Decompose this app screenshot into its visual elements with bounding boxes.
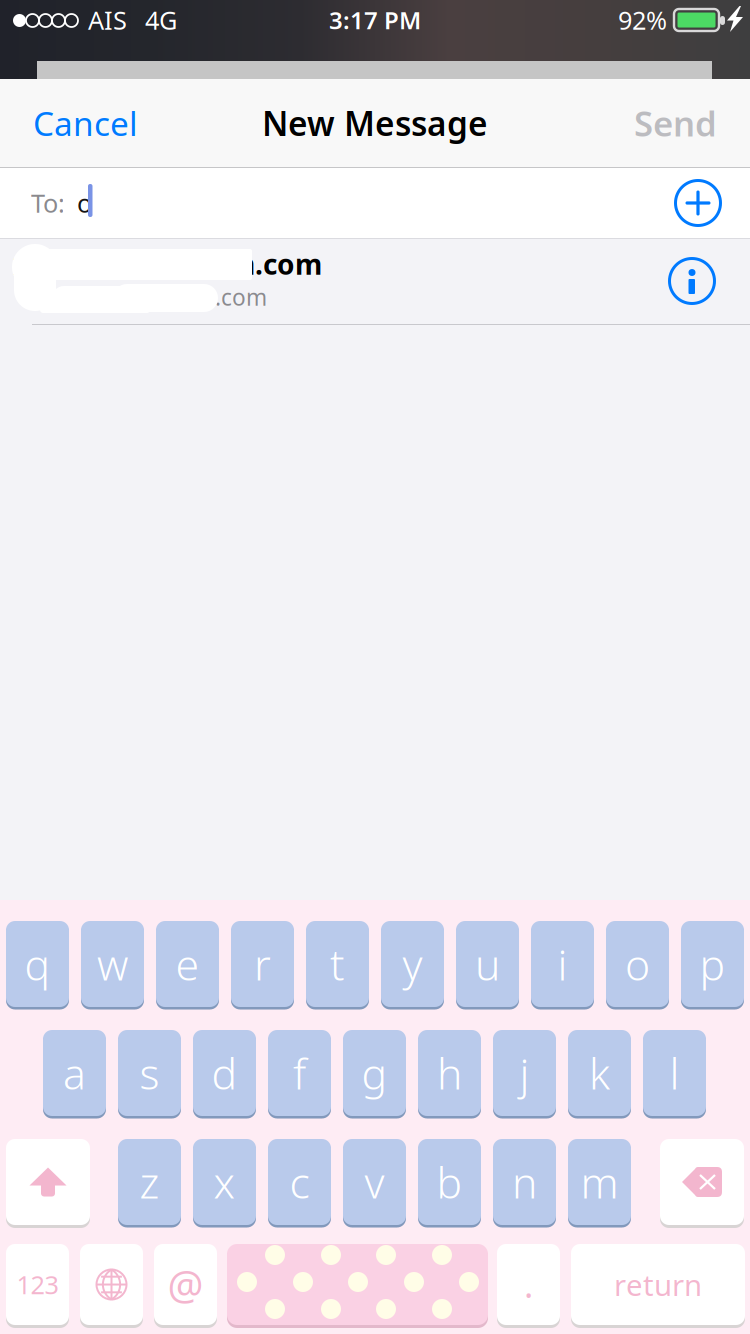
button[interactable]: a <box>43 1030 106 1119</box>
staticText: l <box>669 1045 679 1101</box>
staticText: t <box>330 936 345 992</box>
staticText: o <box>625 936 650 992</box>
button[interactable]: n <box>493 1139 556 1228</box>
staticText: u <box>475 936 500 992</box>
staticText: @ <box>167 1258 203 1311</box>
button[interactable]: k <box>568 1030 631 1119</box>
button[interactable]: c <box>268 1139 331 1228</box>
staticText: o <box>77 186 92 220</box>
staticText: b <box>436 1154 462 1210</box>
staticText: mmmmmmmmm.com <box>12 245 322 283</box>
staticText: x <box>213 1154 235 1210</box>
staticText: 92% <box>618 3 667 37</box>
button[interactable]: s <box>118 1030 181 1119</box>
staticText: i <box>557 936 567 992</box>
button[interactable]: d <box>193 1030 256 1119</box>
staticText: s <box>139 1045 159 1101</box>
staticText: 123 <box>16 1268 58 1301</box>
button[interactable]: f <box>268 1030 331 1119</box>
staticText: n <box>512 1154 537 1210</box>
staticText: w <box>97 936 128 992</box>
staticText: d <box>211 1045 237 1101</box>
button[interactable]: h <box>418 1030 481 1119</box>
button[interactable]: m <box>568 1139 631 1228</box>
staticText: r <box>254 936 271 992</box>
staticText: c <box>289 1154 309 1210</box>
button[interactable]: u <box>456 921 519 1010</box>
button[interactable]: Shift <box>6 1139 90 1228</box>
button[interactable]: w <box>81 921 144 1010</box>
staticText: m <box>580 1154 618 1210</box>
button[interactable]: Send <box>570 79 750 167</box>
staticText: e <box>175 936 199 992</box>
staticText: k <box>589 1045 610 1101</box>
button[interactable]: Add contact <box>674 179 722 227</box>
staticText: To: <box>31 186 65 220</box>
staticText: New Message <box>262 101 488 145</box>
button[interactable]: x <box>193 1139 256 1228</box>
button[interactable]: @ <box>154 1244 217 1328</box>
button[interactable]: j <box>493 1030 556 1119</box>
button[interactable]: v <box>343 1139 406 1228</box>
button[interactable]: l <box>643 1030 706 1119</box>
button[interactable]: g <box>343 1030 406 1119</box>
staticText: 4G <box>145 3 177 37</box>
staticText: v <box>364 1154 384 1210</box>
button[interactable]: Next keyboard <box>80 1244 143 1328</box>
staticText: a <box>63 1045 86 1101</box>
button[interactable]: i <box>531 921 594 1010</box>
button[interactable]: e <box>156 921 219 1010</box>
button[interactable]: o <box>606 921 669 1010</box>
staticText: 3:17 PM <box>329 4 421 36</box>
button[interactable]: return <box>571 1244 745 1328</box>
staticText: y <box>402 936 422 992</box>
staticText: Send <box>634 100 717 146</box>
staticText: . <box>524 1261 533 1307</box>
staticText: h <box>437 1045 462 1101</box>
staticText: AIS <box>88 3 127 37</box>
button[interactable]: p <box>681 921 744 1010</box>
button[interactable]: Delete <box>660 1139 744 1228</box>
button[interactable]: z <box>118 1139 181 1228</box>
staticText: g <box>361 1045 387 1101</box>
button[interactable]: b <box>418 1139 481 1228</box>
staticText: q <box>24 936 50 992</box>
button[interactable]: q <box>6 921 69 1010</box>
staticText: mmmmmmmmm.com <box>26 282 267 312</box>
staticText: return <box>614 1265 702 1304</box>
staticText: p <box>699 936 725 992</box>
staticText: Cancel <box>33 101 138 145</box>
button[interactable]: Cancel <box>0 79 180 167</box>
button[interactable]: space <box>227 1244 488 1328</box>
button[interactable]: r <box>231 921 294 1010</box>
button[interactable]: . <box>497 1244 560 1328</box>
button[interactable]: y <box>381 921 444 1010</box>
button[interactable]: t <box>306 921 369 1010</box>
button[interactable]: 123 <box>6 1244 69 1328</box>
staticText: j <box>519 1045 529 1101</box>
staticText: f <box>293 1045 306 1101</box>
button[interactable]: Contact info <box>668 257 716 305</box>
staticText: z <box>139 1154 159 1210</box>
